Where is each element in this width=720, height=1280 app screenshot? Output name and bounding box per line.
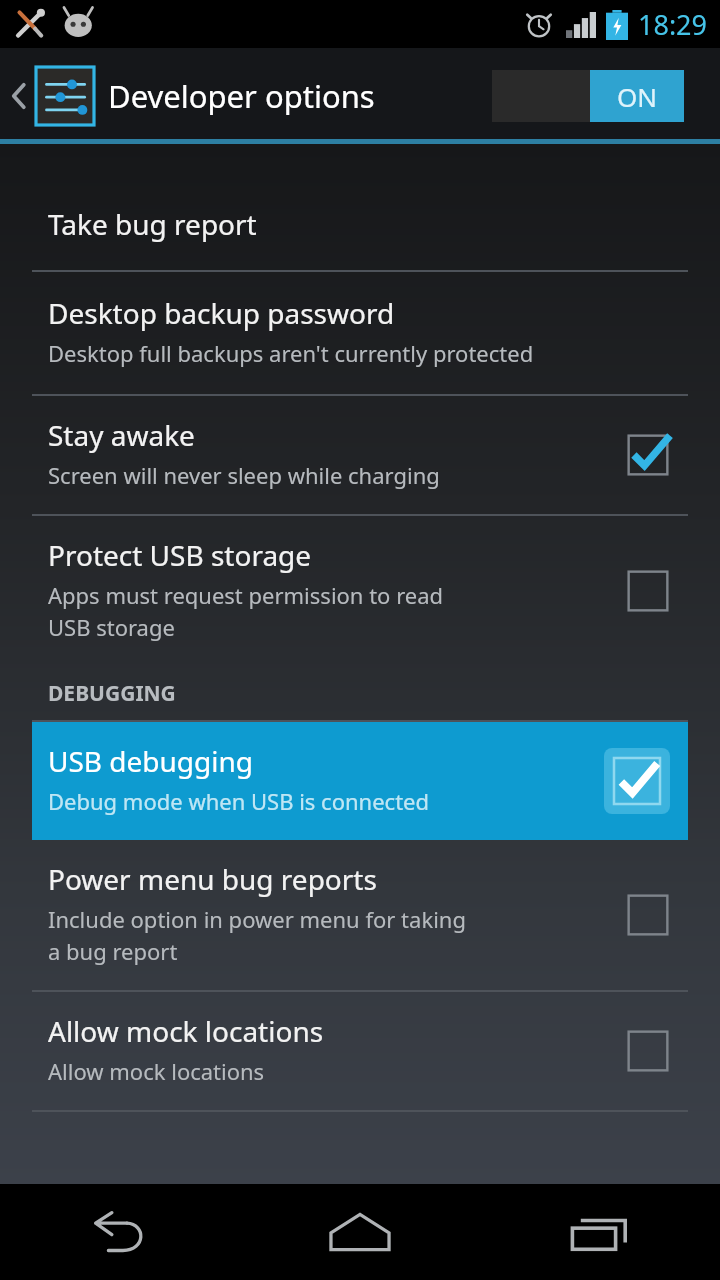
button[interactable]: Back: [0, 1184, 240, 1280]
button[interactable]: Allow mock locations: [0, 992, 720, 1110]
staticText: Include option in power menu for taking: [48, 904, 466, 934]
staticText: 18:29: [638, 6, 708, 43]
button[interactable]: Navigate up: [0, 59, 383, 133]
staticText: Allow mock locations: [48, 1056, 265, 1086]
staticText: Desktop full backups aren't currently pr…: [48, 338, 534, 368]
button[interactable]: Protect USB storage: [0, 516, 720, 666]
staticText: a bug report: [48, 936, 178, 966]
button[interactable]: Desktop backup password: [0, 272, 720, 394]
staticText: Allow mock locations: [48, 1012, 324, 1050]
button[interactable]: Recent apps: [480, 1184, 720, 1280]
staticText: USB storage: [48, 612, 175, 642]
staticText: Take bug report: [48, 205, 257, 243]
button[interactable]: Stay awake: [0, 396, 720, 514]
staticText: USB debugging: [48, 742, 254, 780]
staticText: ON: [617, 79, 658, 114]
button[interactable]: Developer options on/off: [492, 70, 684, 122]
staticText: Apps must request permission to read: [48, 580, 444, 610]
staticText: DEBUGGING: [48, 679, 176, 708]
staticText: Stay awake: [48, 416, 195, 454]
button[interactable]: USB debugging: [32, 722, 688, 840]
staticText: Power menu bug reports: [48, 860, 377, 898]
button[interactable]: Power menu bug reports: [0, 840, 720, 990]
staticText: Desktop backup password: [48, 294, 395, 332]
staticText: Screen will never sleep while charging: [48, 460, 440, 490]
staticText: Developer options: [108, 75, 375, 117]
staticText: Protect USB storage: [48, 536, 312, 574]
staticText: Debug mode when USB is connected: [48, 786, 430, 816]
button[interactable]: Take bug report: [0, 178, 720, 270]
button[interactable]: Home: [240, 1184, 480, 1280]
